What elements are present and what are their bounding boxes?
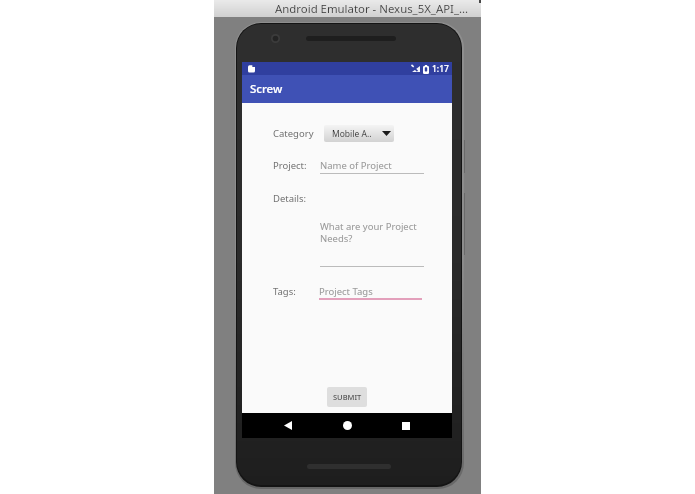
staticText: Category: [273, 127, 314, 140]
button[interactable]: Recent apps: [386, 413, 426, 438]
button[interactable]: Back: [268, 413, 308, 438]
staticText: Mobile A..: [332, 128, 372, 140]
staticText: Project Tags: [319, 285, 373, 298]
staticText: SUBMIT: [333, 392, 362, 402]
button[interactable]: Name of Project: [320, 159, 424, 177]
staticText: Android Emulator - Nexus_5X_API_...: [275, 1, 469, 17]
staticText: What are your Project Needs?: [320, 220, 424, 245]
button[interactable]: Home: [327, 413, 367, 438]
button[interactable]: Category: Mobile App: [324, 125, 394, 142]
button[interactable]: SUBMIT: [327, 387, 367, 407]
staticText: Project:: [273, 159, 307, 172]
staticText: Screw: [250, 81, 283, 97]
button[interactable]: What are your Project Needs?: [320, 220, 424, 270]
staticText: Name of Project: [320, 159, 392, 172]
staticText: Details:: [273, 192, 307, 205]
button[interactable]: Project Tags: [319, 285, 422, 303]
staticText: Tags:: [273, 285, 296, 298]
staticText: 1:17: [432, 63, 449, 75]
